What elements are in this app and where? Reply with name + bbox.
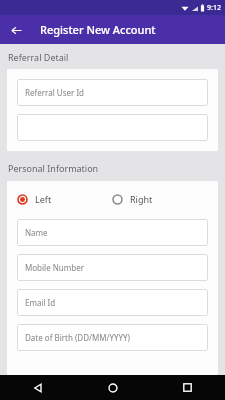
staticText: Email Id [25,297,56,308]
button[interactable]: Back [0,375,75,400]
staticText: Name [25,227,48,238]
staticText: Date of Birth (DD/MM/YYYY) [25,332,131,343]
staticText: 9:12 [207,3,221,13]
button[interactable]: Right [112,193,208,205]
button[interactable]: Name [17,219,208,246]
button[interactable]: Back [6,20,26,40]
staticText: Right [130,193,153,205]
staticText: Referral Detail [8,51,69,63]
button[interactable]: Recent apps [150,375,225,400]
staticText: Referral User Id [25,87,85,98]
button[interactable] [17,114,208,141]
button[interactable]: Email Id [17,289,208,316]
button[interactable]: Home [75,375,150,400]
button[interactable]: Referral User Id [17,79,208,106]
staticText: Left [35,193,52,205]
button[interactable]: Date of Birth (DD/MM/YYYY) [17,324,208,351]
staticText: Register New Account [40,22,156,37]
button[interactable]: Mobile Number [17,254,208,281]
button[interactable]: Left [17,193,112,205]
staticText: Mobile Number [25,262,84,273]
staticText: Personal Information [8,162,99,174]
